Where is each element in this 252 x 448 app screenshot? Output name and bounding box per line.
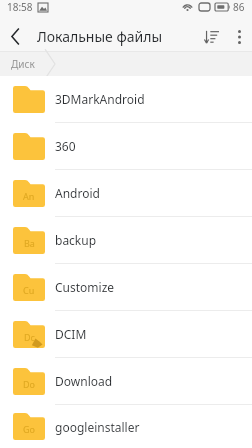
staticText: Dc — [24, 331, 35, 343]
staticText: 3DMarkAndroid — [55, 91, 145, 107]
staticText: 86 — [233, 0, 245, 14]
staticText: 360 — [55, 138, 76, 154]
button[interactable]: Диск — [9, 54, 37, 74]
staticText: An — [23, 190, 35, 202]
staticText: Customize — [55, 279, 115, 295]
button[interactable]: Back — [0, 21, 30, 52]
button[interactable]: Ba — [0, 216, 252, 263]
staticText: Cu — [23, 284, 35, 296]
button[interactable]: More options — [226, 21, 252, 52]
staticText: Do — [23, 378, 36, 390]
staticText: Download — [55, 373, 113, 389]
staticText: 18:58 — [7, 0, 33, 14]
staticText: backup — [55, 232, 97, 248]
button[interactable]: 3DMarkAndroid — [0, 76, 252, 122]
button[interactable]: An — [0, 169, 252, 216]
staticText: Go — [23, 423, 35, 435]
button[interactable]: Dc — [0, 310, 252, 357]
button[interactable]: Go — [0, 404, 252, 448]
button[interactable]: Sort — [196, 21, 226, 52]
staticText: Ba — [24, 237, 35, 249]
staticText: DCIM — [55, 326, 87, 342]
staticText: Android — [55, 185, 100, 201]
button[interactable]: 360 — [0, 122, 252, 169]
staticText: Диск — [11, 57, 35, 71]
button[interactable]: Cu — [0, 263, 252, 310]
button[interactable]: Do — [0, 357, 252, 404]
staticText: googleinstaller — [55, 419, 140, 435]
staticText: Локальные файлы — [37, 27, 163, 46]
